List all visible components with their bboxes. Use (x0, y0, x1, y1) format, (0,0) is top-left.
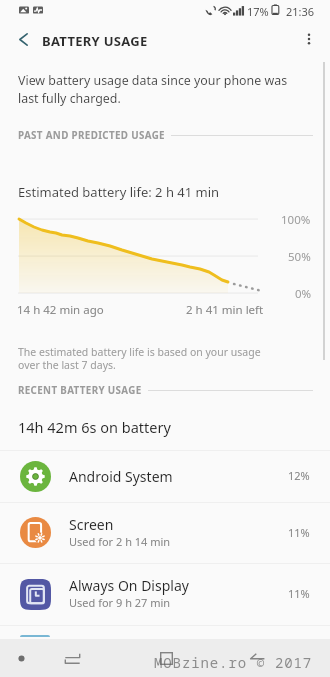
staticText: View battery usage data since your phone… (18, 72, 288, 106)
staticText: Screen (69, 515, 114, 534)
staticText: 2 h 41 min left (186, 302, 264, 318)
staticText: 14 h 42 min ago (17, 302, 104, 318)
button[interactable]: Home (144, 639, 188, 677)
staticText: 21:36 (286, 4, 315, 19)
staticText: Android System (69, 467, 173, 486)
staticText: The estimated battery life is based on y… (18, 345, 261, 372)
button[interactable]: Navigate up (6, 22, 40, 56)
staticText: 11% (288, 525, 310, 540)
staticText: 50% (288, 249, 311, 265)
staticText: 0% (295, 286, 312, 302)
staticText: 12% (288, 468, 310, 483)
staticText: BATTERY USAGE (42, 32, 148, 50)
button[interactable]: Android System (0, 450, 330, 502)
button[interactable]: Menu (5, 639, 37, 677)
staticText: RECENT BATTERY USAGE (18, 384, 142, 397)
staticText: 100% (281, 212, 311, 228)
staticText: Used for 2 h 14 min (69, 534, 171, 549)
button[interactable]: Always On Display (0, 563, 330, 625)
staticText: Always On Display (69, 576, 189, 595)
button[interactable]: More options (292, 22, 326, 56)
button[interactable]: Back (235, 639, 279, 677)
staticText: 14h 42m 6s on battery (18, 417, 171, 437)
button[interactable]: Screen (0, 502, 330, 563)
staticText: 11% (288, 586, 310, 601)
staticText: MOBzine.ro © 2017 (154, 653, 313, 672)
button[interactable]: Recent apps (50, 639, 94, 677)
staticText: Estimated battery life: 2 h 41 min (18, 183, 220, 201)
staticText: PAST AND PREDICTED USAGE (18, 129, 165, 142)
staticText: Used for 9 h 27 min (69, 595, 171, 610)
staticText: 17% (247, 4, 269, 19)
